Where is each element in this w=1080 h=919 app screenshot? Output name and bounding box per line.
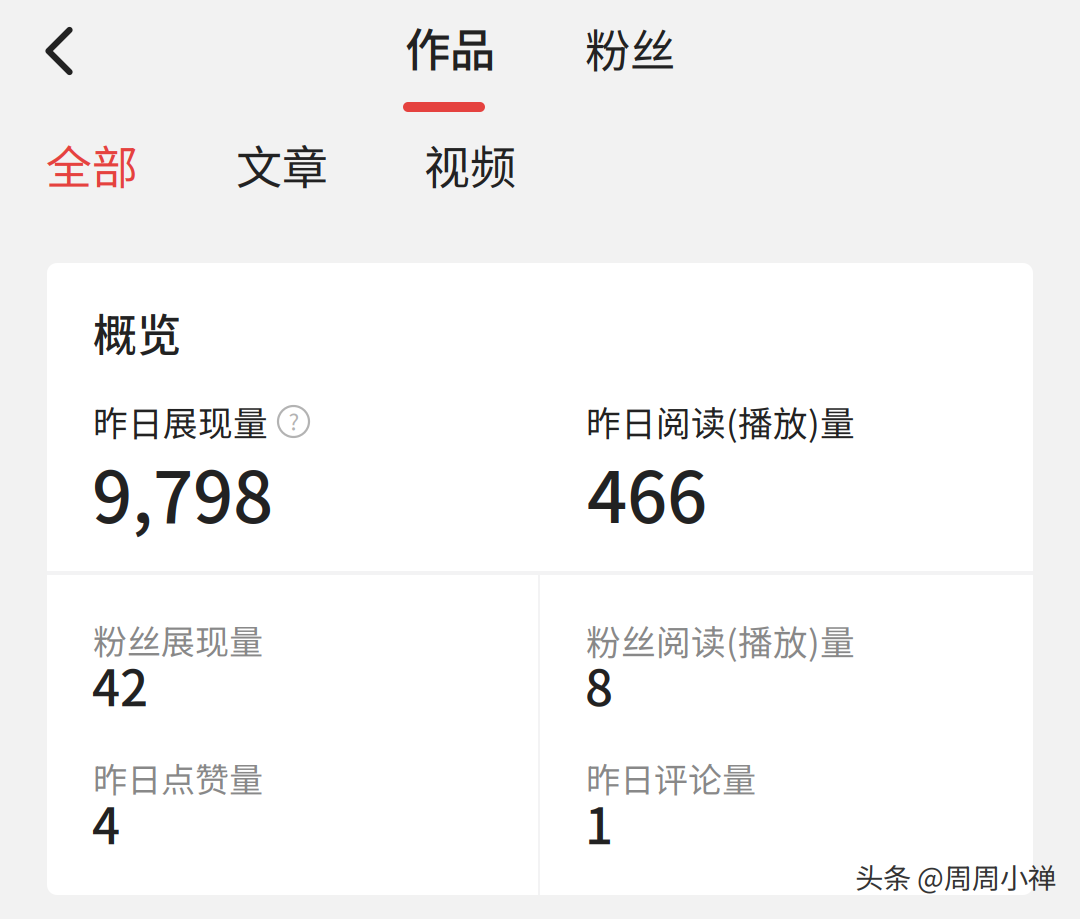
- staticText: 466: [587, 441, 707, 543]
- staticText: 全部: [46, 131, 138, 198]
- staticText: 粉丝阅读(播放)量: [586, 615, 855, 665]
- button[interactable]: Back: [13, 5, 105, 97]
- staticText: 概览: [93, 300, 181, 364]
- staticText: 9,798: [92, 441, 273, 543]
- staticText: 昨日展现量: [93, 396, 268, 446]
- button[interactable]: 文章: [236, 117, 346, 221]
- staticText: 8: [585, 649, 613, 720]
- staticText: 视频: [424, 131, 516, 198]
- button[interactable]: 全部: [46, 117, 156, 221]
- staticText: 文章: [236, 131, 328, 198]
- staticText: 粉丝: [585, 15, 675, 81]
- staticText: 昨日评论量: [586, 753, 756, 802]
- staticText: 作品: [405, 14, 495, 80]
- button[interactable]: 视频: [424, 117, 534, 221]
- staticText: 昨日阅读(播放)量: [586, 396, 855, 446]
- button[interactable]: 作品: [402, 0, 498, 118]
- staticText: 昨日点赞量: [93, 753, 263, 802]
- staticText: 头条 @周周小禅: [855, 856, 1056, 897]
- button[interactable]: 粉丝: [585, 0, 681, 118]
- staticText: 4: [92, 787, 120, 858]
- staticText: 1: [585, 787, 613, 858]
- staticText: 粉丝展现量: [93, 615, 263, 664]
- staticText: ?: [288, 404, 299, 437]
- staticText: 42: [92, 649, 148, 720]
